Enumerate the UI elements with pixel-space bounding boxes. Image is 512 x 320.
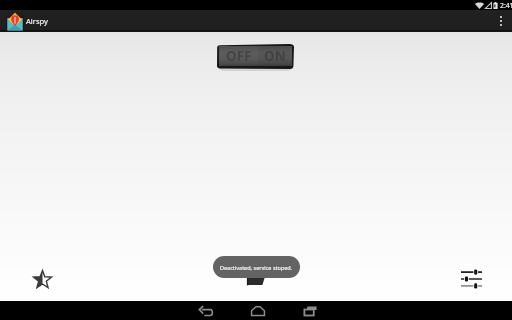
staticText: 2:41 — [500, 1, 512, 10]
staticText: ON — [264, 47, 286, 65]
button[interactable]: Back — [188, 301, 224, 320]
staticText: Airspy — [26, 16, 48, 26]
button[interactable]: Home — [240, 301, 276, 320]
button[interactable]: Settings — [455, 263, 487, 295]
button[interactable]: Service toggle — [217, 44, 294, 69]
button[interactable]: More options — [490, 10, 512, 32]
button[interactable]: Favorite — [26, 264, 58, 296]
staticText: OFF — [226, 47, 252, 65]
staticText: Deactivated, service stoped. — [220, 264, 293, 271]
button[interactable]: Recent apps — [292, 301, 328, 320]
